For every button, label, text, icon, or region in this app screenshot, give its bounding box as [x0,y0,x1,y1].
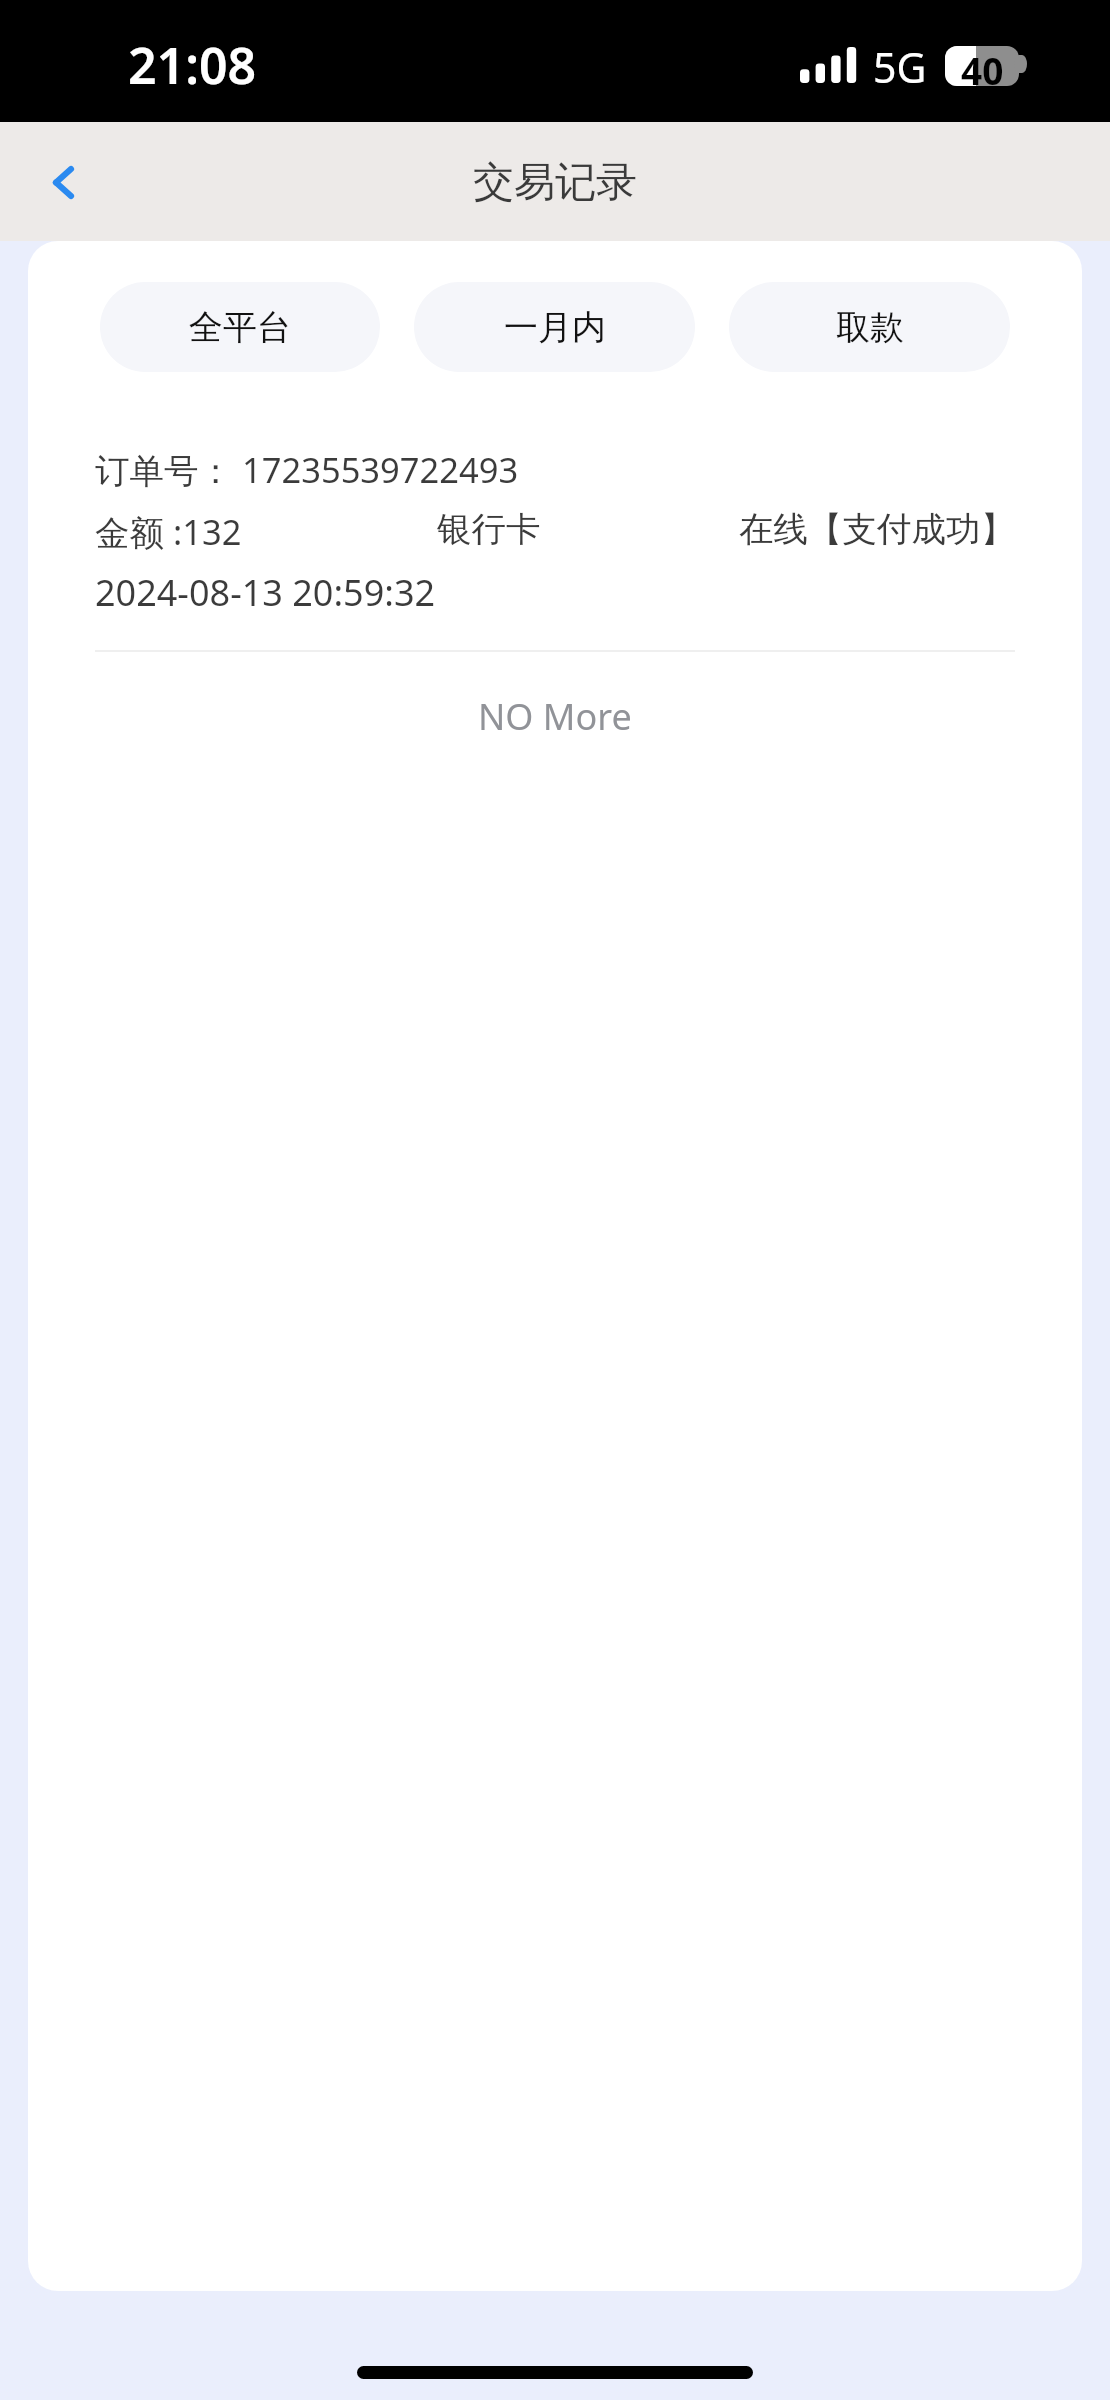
staticText: 2024-08-13 20:59:32 [95,568,436,617]
staticText: 银行卡 [437,508,739,551]
staticText: 40 [961,45,1004,85]
staticText: 订单号： 17235539722493 [95,446,519,493]
staticText: 取款 [836,306,904,349]
staticText: 全平台 [189,306,291,349]
button[interactable]: Back [18,137,108,227]
button[interactable]: 订单号： 17235539722493 [28,446,1082,652]
button[interactable]: 取款 [729,282,1010,372]
staticText: 在线【支付成功】 [739,508,1015,551]
button[interactable]: 一月内 [414,282,695,372]
staticText: 21:08 [128,31,257,99]
staticText: 5G [873,39,927,87]
staticText: 交易记录 [473,157,637,209]
staticText: NO More [478,692,632,741]
button[interactable]: 全平台 [100,282,380,372]
staticText: 金额 :132 [95,508,437,555]
staticText: 一月内 [504,306,606,349]
